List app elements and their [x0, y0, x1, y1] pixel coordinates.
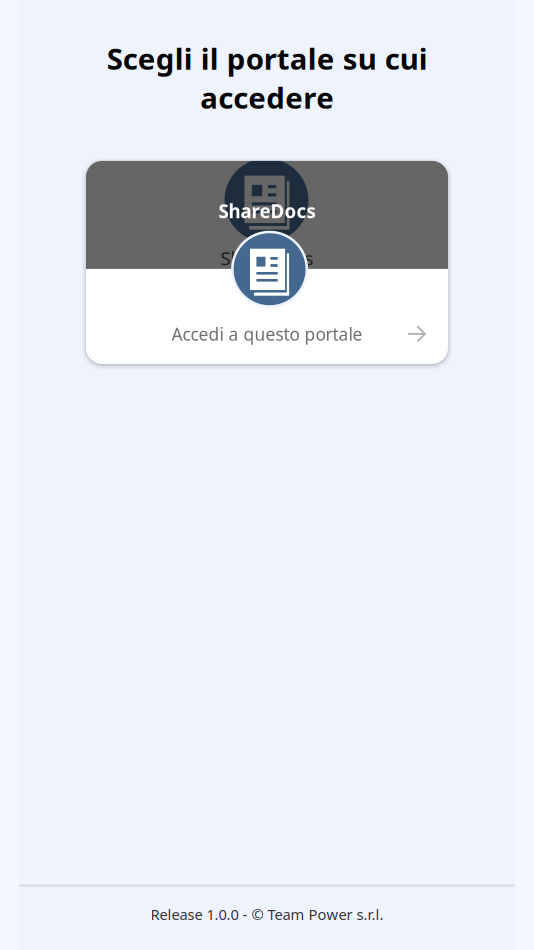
staticText: ShareDocs [218, 198, 315, 223]
staticText: ShareDocs [220, 245, 313, 270]
staticText: Accedi a questo portale [171, 322, 362, 345]
button[interactable]: ShareDocs [86, 161, 448, 364]
staticText: Release 1.0.0 - © Team Power s.r.l. [150, 904, 383, 924]
staticText: Scegli il portale su cui accedere [106, 39, 427, 117]
